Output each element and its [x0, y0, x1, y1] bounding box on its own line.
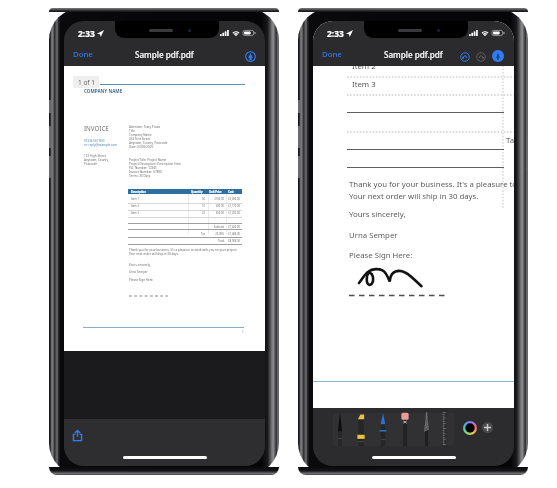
staticText: Title [129, 129, 135, 133]
staticText: 2:33 [327, 28, 344, 39]
staticText: Item 2 [352, 61, 376, 72]
staticText: £100.00 [128, 197, 224, 201]
staticText: £1,484.00 [128, 232, 240, 236]
staticText: Done [322, 49, 342, 60]
staticText: Urna Semper [349, 230, 398, 241]
staticText: Your next order will ship in 30 days. [349, 191, 479, 202]
staticText: Sample pdf.pdf [135, 49, 194, 60]
staticText: £5,000.00 [128, 197, 240, 201]
staticText: Item 2 [131, 204, 139, 208]
button[interactable]: Color picker [463, 421, 477, 435]
staticText: Subtotal [128, 225, 224, 229]
staticText: 50 [128, 197, 205, 201]
staticText: £7,420.00 [128, 225, 240, 229]
button[interactable]: Markup tool [377, 412, 389, 446]
staticText: Item 1 [131, 197, 139, 201]
staticText: 10 [128, 204, 205, 208]
button[interactable]: Markup [492, 50, 504, 62]
staticText: Description [131, 190, 146, 194]
staticText: Terms: 30 Days [129, 174, 151, 178]
staticText: £90.00 [128, 204, 224, 208]
staticText: Your next order will ship in 30 days. [129, 252, 179, 256]
staticText: Anytown, County, Postcode [129, 141, 168, 145]
staticText: Postcode [84, 162, 97, 166]
staticText: re: reply@example.com [84, 143, 118, 147]
staticText: 20.00% [128, 232, 224, 236]
staticText: Item 3 [131, 211, 139, 215]
staticText: Urna Semper [129, 270, 148, 274]
staticText: Yours sincerely, [349, 209, 406, 220]
staticText: Tax [506, 135, 514, 146]
staticText: Thank you for your business. It's a plea… [349, 179, 514, 190]
staticText: Sample pdf.pdf [384, 49, 443, 60]
button[interactable]: Markup tool [438, 412, 450, 446]
staticText: 432 First Street [129, 137, 151, 141]
staticText: Project Description: Description Here [129, 162, 182, 166]
staticText: Invoice Number: 67890 [129, 170, 162, 174]
staticText: Item 3 [352, 79, 376, 90]
staticText: Date: 03/05/2025 [129, 145, 154, 149]
staticText: Anytown, County, [84, 158, 109, 162]
button[interactable]: Redo [476, 52, 486, 62]
staticText: Cost [228, 190, 234, 194]
staticText: Quantity [191, 190, 203, 194]
staticText: 2:33 [78, 28, 95, 39]
button[interactable]: Markup tool [355, 412, 367, 446]
button[interactable]: Add [482, 422, 493, 433]
staticText: 25 [128, 211, 205, 215]
button[interactable]: Markup tool [334, 412, 346, 446]
staticText: Project Title: Project Name [129, 158, 167, 162]
staticText: 123 High Street [84, 154, 106, 158]
staticText: P.O. Number: 12345 [129, 166, 157, 170]
staticText: 01234 567 890 [84, 139, 105, 143]
button[interactable]: Markup tool [420, 412, 432, 446]
button[interactable]: Share [69, 427, 85, 443]
staticText: Tax [128, 232, 205, 236]
staticText: Unit Price [209, 190, 222, 194]
button[interactable]: Done [318, 45, 346, 64]
staticText: Done [73, 49, 93, 60]
staticText: £50.00 [128, 211, 224, 215]
staticText: Please Sign Here: [129, 278, 154, 282]
staticText: COMPANY NAME [84, 88, 123, 94]
staticText: 1 [242, 330, 244, 334]
staticText: 1 of 1 [78, 78, 95, 87]
button[interactable]: Markup tool [399, 412, 411, 446]
staticText: £1,170.00 [128, 204, 240, 208]
staticText: Thank you for your business. It's a plea… [129, 248, 238, 252]
button[interactable]: Undo [460, 52, 470, 62]
staticText: Please Sign Here: [349, 250, 413, 261]
staticText: £8,904.00 [128, 239, 240, 243]
staticText: INVOICE [84, 124, 109, 132]
button[interactable]: Markup [245, 51, 256, 62]
staticText: Company Name [129, 133, 152, 137]
staticText: Yours sincerely, [129, 263, 151, 267]
staticText: Total [128, 239, 224, 243]
button[interactable]: Done [69, 45, 97, 64]
staticText: £1,250.00 [128, 211, 240, 215]
staticText: Attention: Tracy Prusa [129, 125, 160, 129]
